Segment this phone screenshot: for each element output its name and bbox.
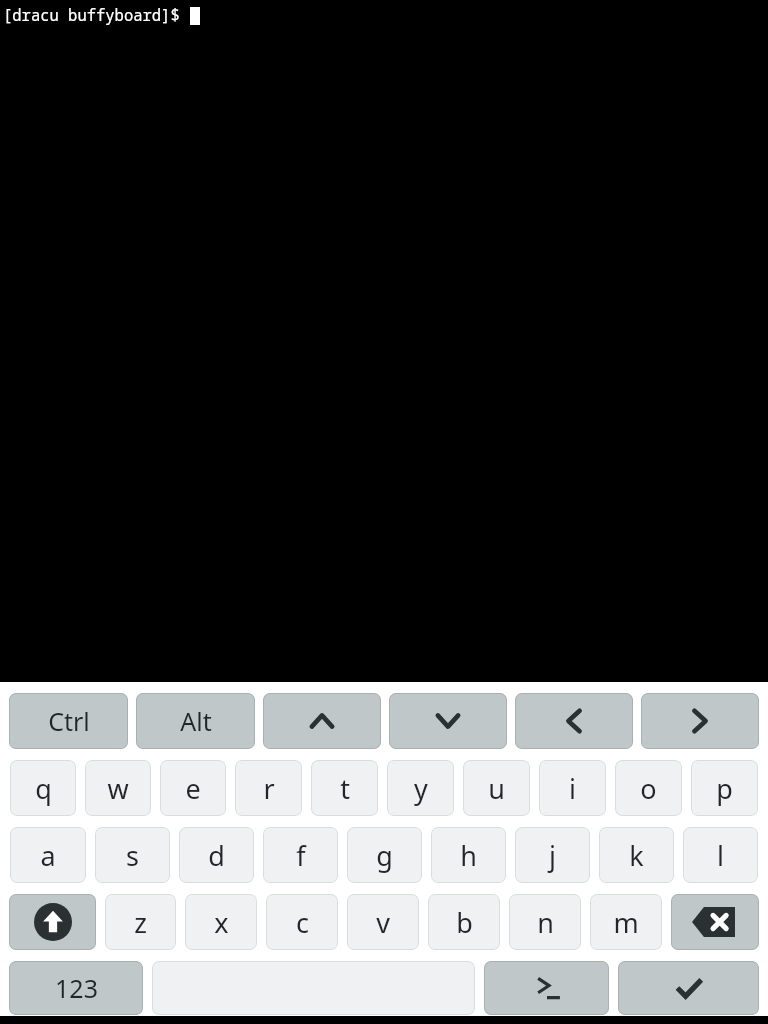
button[interactable]: c — [266, 894, 338, 950]
button[interactable]: j — [515, 827, 590, 883]
button[interactable]: y — [387, 760, 454, 816]
button[interactable]: z — [105, 894, 176, 950]
button[interactable]: Space — [152, 961, 475, 1015]
staticText: j — [549, 837, 556, 874]
staticText: b — [456, 904, 473, 941]
button[interactable]: Terminal — [484, 961, 609, 1015]
button[interactable]: i — [539, 760, 606, 816]
button[interactable]: s — [95, 827, 170, 883]
staticText: l — [717, 837, 724, 874]
staticText: [dracu buffyboard]$ — [3, 4, 190, 25]
staticText: Ctrl — [48, 704, 90, 738]
staticText: k — [629, 837, 644, 874]
button[interactable]: Arrow up — [263, 693, 381, 749]
button[interactable]: h — [431, 827, 506, 883]
button[interactable]: q — [10, 760, 76, 816]
staticText: g — [376, 837, 393, 874]
staticText: t — [340, 770, 350, 807]
staticText: f — [296, 837, 306, 874]
button[interactable]: e — [160, 760, 226, 816]
button[interactable]: w — [85, 760, 151, 816]
staticText: Alt — [180, 704, 212, 738]
staticText: w — [107, 770, 129, 807]
button[interactable]: n — [509, 894, 581, 950]
staticText: s — [126, 837, 139, 874]
staticText: r — [263, 770, 275, 807]
staticText: z — [134, 904, 147, 941]
staticText: a — [40, 837, 56, 874]
button[interactable]: u — [463, 760, 530, 816]
staticText: h — [460, 837, 477, 874]
staticText: 123 — [55, 971, 98, 1005]
button[interactable]: Enter — [618, 961, 759, 1015]
button[interactable]: v — [347, 894, 419, 950]
staticText: m — [613, 904, 639, 941]
staticText: n — [537, 904, 554, 941]
staticText: x — [214, 904, 229, 941]
button[interactable]: Arrow right — [641, 693, 759, 749]
staticText: i — [569, 770, 576, 807]
button[interactable]: f — [263, 827, 338, 883]
button[interactable]: l — [683, 827, 758, 883]
staticText: y — [414, 770, 428, 807]
button[interactable]: x — [185, 894, 257, 950]
staticText: d — [208, 837, 225, 874]
button[interactable]: g — [347, 827, 422, 883]
button[interactable]: 123 — [9, 961, 143, 1015]
button[interactable]: b — [428, 894, 500, 950]
button[interactable]: a — [10, 827, 86, 883]
staticText: c — [296, 904, 309, 941]
button[interactable]: d — [179, 827, 254, 883]
button[interactable]: o — [615, 760, 682, 816]
staticText: u — [488, 770, 505, 807]
staticText: e — [185, 770, 201, 807]
staticText: v — [376, 904, 390, 941]
button[interactable]: Alt — [136, 693, 255, 749]
button[interactable]: k — [599, 827, 674, 883]
staticText: q — [35, 770, 52, 807]
button[interactable]: t — [311, 760, 378, 816]
button[interactable]: p — [691, 760, 758, 816]
staticText: o — [640, 770, 657, 807]
button[interactable]: Ctrl — [9, 693, 128, 749]
button[interactable]: m — [590, 894, 662, 950]
button[interactable]: Arrow left — [515, 693, 633, 749]
button[interactable]: Backspace — [671, 894, 759, 950]
staticText: p — [716, 770, 733, 807]
button[interactable]: Shift — [9, 894, 96, 950]
button[interactable]: r — [235, 760, 302, 816]
button[interactable]: Arrow down — [389, 693, 507, 749]
